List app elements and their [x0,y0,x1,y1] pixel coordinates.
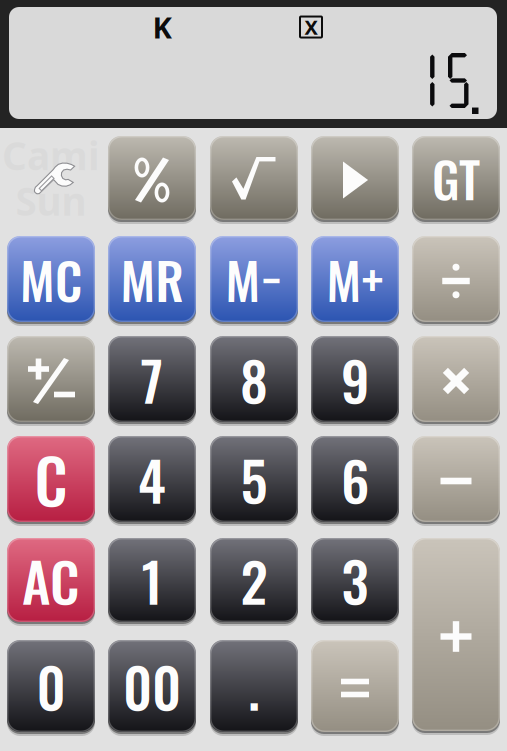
button[interactable]: Settings [32,161,78,197]
staticText: 7 [140,338,163,419]
staticText: M+ [326,241,383,317]
staticText: C [34,434,67,524]
staticText: 0 [36,645,65,726]
staticText: X [304,14,317,40]
button[interactable]: Percent [108,136,196,220]
button[interactable]: Plus [412,538,500,731]
staticText: MR [120,241,183,317]
button[interactable]: Divide [412,236,500,322]
staticText: . [248,645,260,726]
button[interactable]: Sign [7,336,95,422]
staticText: 00 [123,645,181,726]
staticText: AC [22,539,80,620]
button[interactable]: Grand total [412,136,500,220]
button[interactable]: 8 [210,336,298,422]
button[interactable]: 5 [210,436,298,522]
staticText: 2 [240,539,267,620]
button[interactable]: Memory clear [7,236,95,322]
staticText: GT [432,141,480,214]
staticText: 4 [138,438,166,519]
button[interactable]: Memory minus [210,236,298,322]
staticText: 3 [341,539,368,620]
button[interactable]: Multiply [412,336,500,422]
button[interactable]: Double zero [108,640,196,732]
staticText: 5 [240,438,267,519]
staticText: 1 [141,539,162,620]
button[interactable]: Memory recall [108,236,196,322]
button[interactable]: 7 [108,336,196,422]
button[interactable]: Minus [412,436,500,522]
staticText: 8 [240,338,268,419]
button[interactable]: All clear [7,538,95,622]
staticText: Sun [15,175,86,226]
button[interactable]: 6 [311,436,399,522]
button[interactable]: 9 [311,336,399,422]
button[interactable]: 4 [108,436,196,522]
button[interactable]: Clear [7,436,95,522]
button[interactable]: 3 [311,538,399,622]
staticText: 9 [341,338,369,419]
button[interactable]: 0 [7,640,95,732]
staticText: K [152,7,171,46]
button[interactable]: Decimal point [210,640,298,732]
staticText: Cami [2,130,100,181]
button[interactable]: Equals [311,640,399,732]
staticText: M− [225,241,282,317]
button[interactable]: Memory plus [311,236,399,322]
button[interactable]: 1 [108,538,196,622]
button[interactable]: 2 [210,538,298,622]
staticText: MC [20,241,82,317]
button[interactable]: Square root [210,136,298,220]
staticText: 6 [341,438,369,519]
button[interactable]: Play [311,136,399,220]
